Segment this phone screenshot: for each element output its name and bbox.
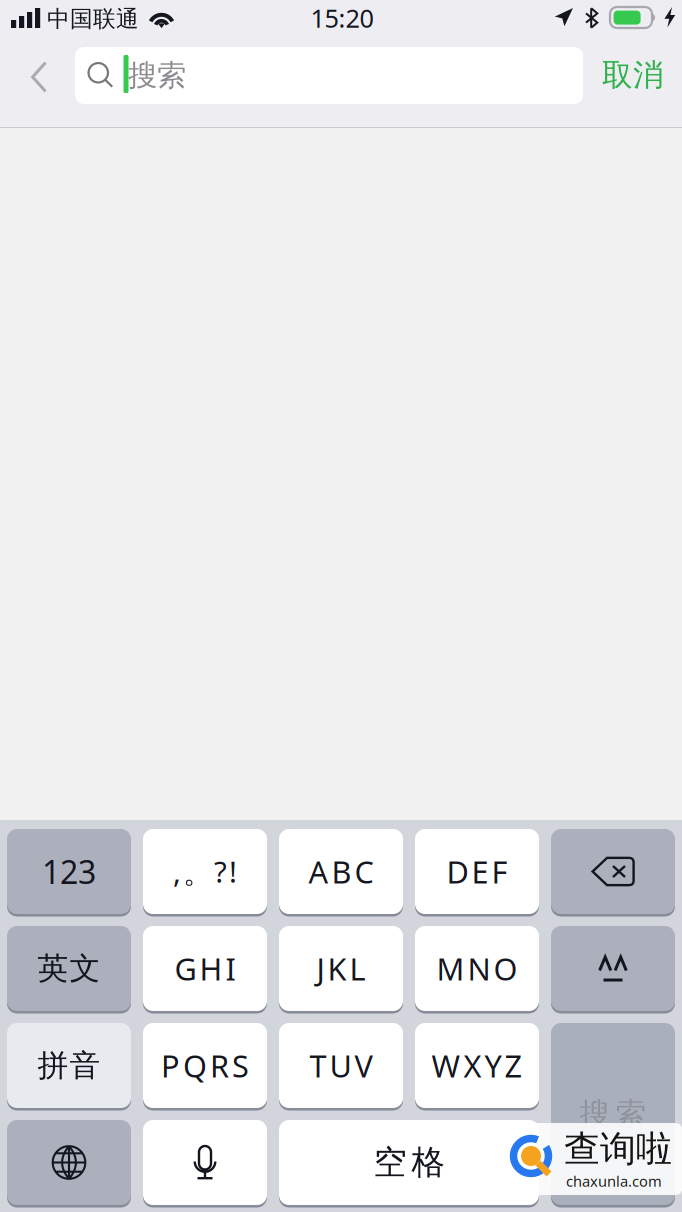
staticText: 123	[42, 850, 96, 893]
button[interactable]: PQRS	[143, 1023, 267, 1111]
button[interactable]: ABC	[279, 829, 403, 917]
staticText: PQRS	[161, 1045, 249, 1086]
button[interactable]: 搜索	[551, 1023, 675, 1208]
staticText: 中国联通	[47, 5, 139, 33]
staticText: 搜索	[128, 57, 186, 93]
staticText: chaxunla.com	[566, 1171, 662, 1191]
staticText: ,。?!	[173, 852, 237, 891]
staticText: 15:20	[310, 1, 373, 35]
button[interactable]: 拼音	[7, 1023, 131, 1111]
staticText: 查询啦	[564, 1127, 672, 1171]
staticText: 拼音	[37, 1047, 100, 1084]
button[interactable]: 英文	[7, 926, 131, 1014]
button[interactable]: 123	[7, 829, 131, 917]
button[interactable]: ,。?!	[143, 829, 267, 917]
button[interactable]	[7, 1120, 131, 1208]
button[interactable]: GHI	[143, 926, 267, 1014]
staticText: ABC	[308, 851, 373, 892]
button[interactable]: DEF	[415, 829, 539, 917]
button[interactable]: 空格	[279, 1120, 539, 1208]
staticText: JKL	[316, 948, 365, 989]
staticText: TUV	[309, 1045, 372, 1086]
button[interactable]: MNO	[415, 926, 539, 1014]
button[interactable]: TUV	[279, 1023, 403, 1111]
button[interactable]: 取消	[594, 46, 672, 104]
staticText: 空格	[373, 1142, 444, 1183]
button[interactable]: 搜索	[75, 47, 583, 104]
button[interactable]: WXYZ	[415, 1023, 539, 1111]
staticText: 英文	[37, 950, 100, 987]
button[interactable]	[551, 829, 675, 917]
staticText: 搜索	[579, 1095, 646, 1133]
button[interactable]	[551, 926, 675, 1014]
staticText: MNO	[436, 948, 517, 989]
button[interactable]: Back	[16, 48, 62, 106]
button[interactable]: JKL	[279, 926, 403, 1014]
staticText: 取消	[602, 56, 664, 94]
button[interactable]	[143, 1120, 267, 1208]
staticText: GHI	[174, 948, 235, 989]
staticText: WXYZ	[431, 1045, 522, 1086]
staticText: DEF	[446, 851, 507, 892]
